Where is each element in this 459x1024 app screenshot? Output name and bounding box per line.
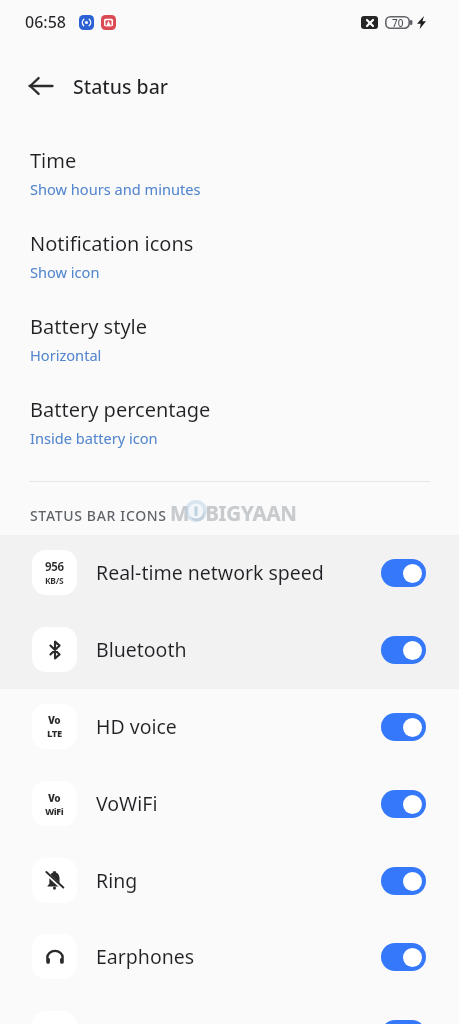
button[interactable]: Battery style: [0, 312, 459, 378]
staticText: 06:58: [25, 11, 66, 33]
button[interactable]: Toggle on: [381, 713, 426, 741]
staticText: Notification icons: [30, 230, 194, 257]
button[interactable]: Bluetooth: [0, 611, 459, 688]
button[interactable]: Toggle on: [381, 1020, 426, 1024]
button[interactable]: Ring: [0, 842, 459, 919]
staticText: Status bar: [73, 73, 169, 100]
staticText: Bluetooth: [96, 636, 381, 663]
staticText: Inside battery icon: [30, 428, 158, 448]
button[interactable]: Toggle on: [381, 943, 426, 971]
button[interactable]: Toggle on: [381, 790, 426, 818]
button[interactable]: 956: [0, 534, 459, 611]
button[interactable]: Back: [22, 67, 60, 105]
button[interactable]: Time: [0, 146, 459, 212]
button[interactable]: Toggle on: [381, 559, 426, 587]
staticText: WiFi: [45, 805, 64, 817]
button[interactable]: Silent: [0, 995, 459, 1024]
staticText: HD voice: [96, 713, 381, 740]
staticText: Battery style: [30, 313, 148, 340]
button[interactable]: Vo: [0, 765, 459, 842]
button[interactable]: Battery percentage: [0, 395, 459, 461]
button[interactable]: Toggle on: [381, 867, 426, 895]
button[interactable]: Earphones: [0, 918, 459, 995]
staticText: Real-time network speed: [96, 559, 381, 586]
staticText: Earphones: [96, 943, 381, 970]
staticText: Horizontal: [30, 345, 102, 365]
staticText: KB/S: [45, 575, 64, 587]
staticText: 956: [45, 559, 64, 575]
staticText: Vo: [48, 713, 61, 727]
staticText: STATUS BAR ICONS: [30, 506, 167, 525]
staticText: 70: [392, 16, 404, 29]
staticText: Battery percentage: [30, 396, 211, 423]
staticText: VoWiFi: [96, 790, 381, 817]
staticText: MOBIGYAAN: [170, 499, 297, 527]
staticText: LTE: [47, 727, 62, 740]
staticText: Show icon: [30, 262, 100, 282]
staticText: Show hours and minutes: [30, 179, 201, 199]
button[interactable]: Notification icons: [0, 229, 459, 295]
button[interactable]: Vo: [0, 688, 459, 765]
staticText: Vo: [48, 791, 61, 805]
button[interactable]: Toggle on: [381, 636, 426, 664]
staticText: Time: [30, 147, 77, 174]
staticText: Ring: [96, 867, 381, 894]
